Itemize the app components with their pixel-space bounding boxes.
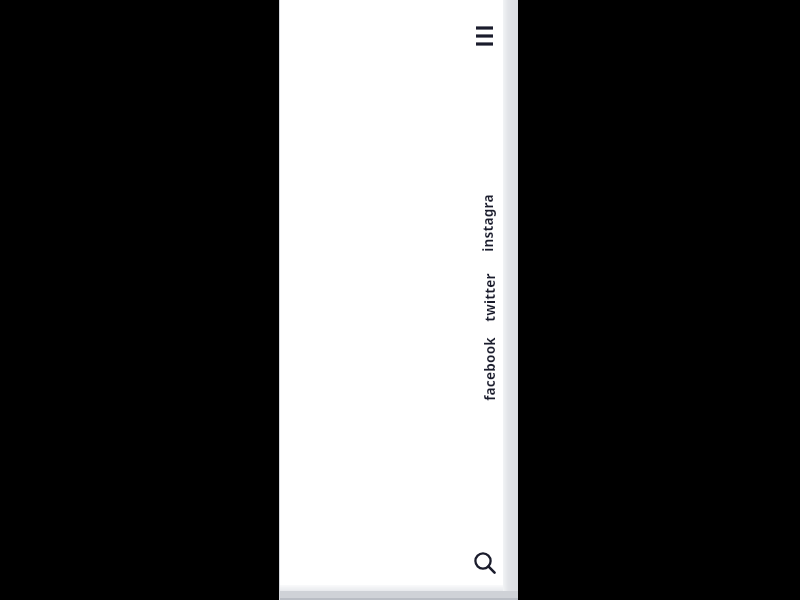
button[interactable]: Open navigation menu <box>471 18 505 54</box>
button[interactable]: instagram <box>479 190 501 256</box>
staticText: facebook <box>481 337 499 401</box>
staticText: instagram <box>479 190 501 256</box>
button[interactable]: Search <box>468 547 500 579</box>
button[interactable]: facebook <box>479 337 501 401</box>
button[interactable]: twitter <box>479 272 501 324</box>
staticText: twitter <box>481 273 499 322</box>
